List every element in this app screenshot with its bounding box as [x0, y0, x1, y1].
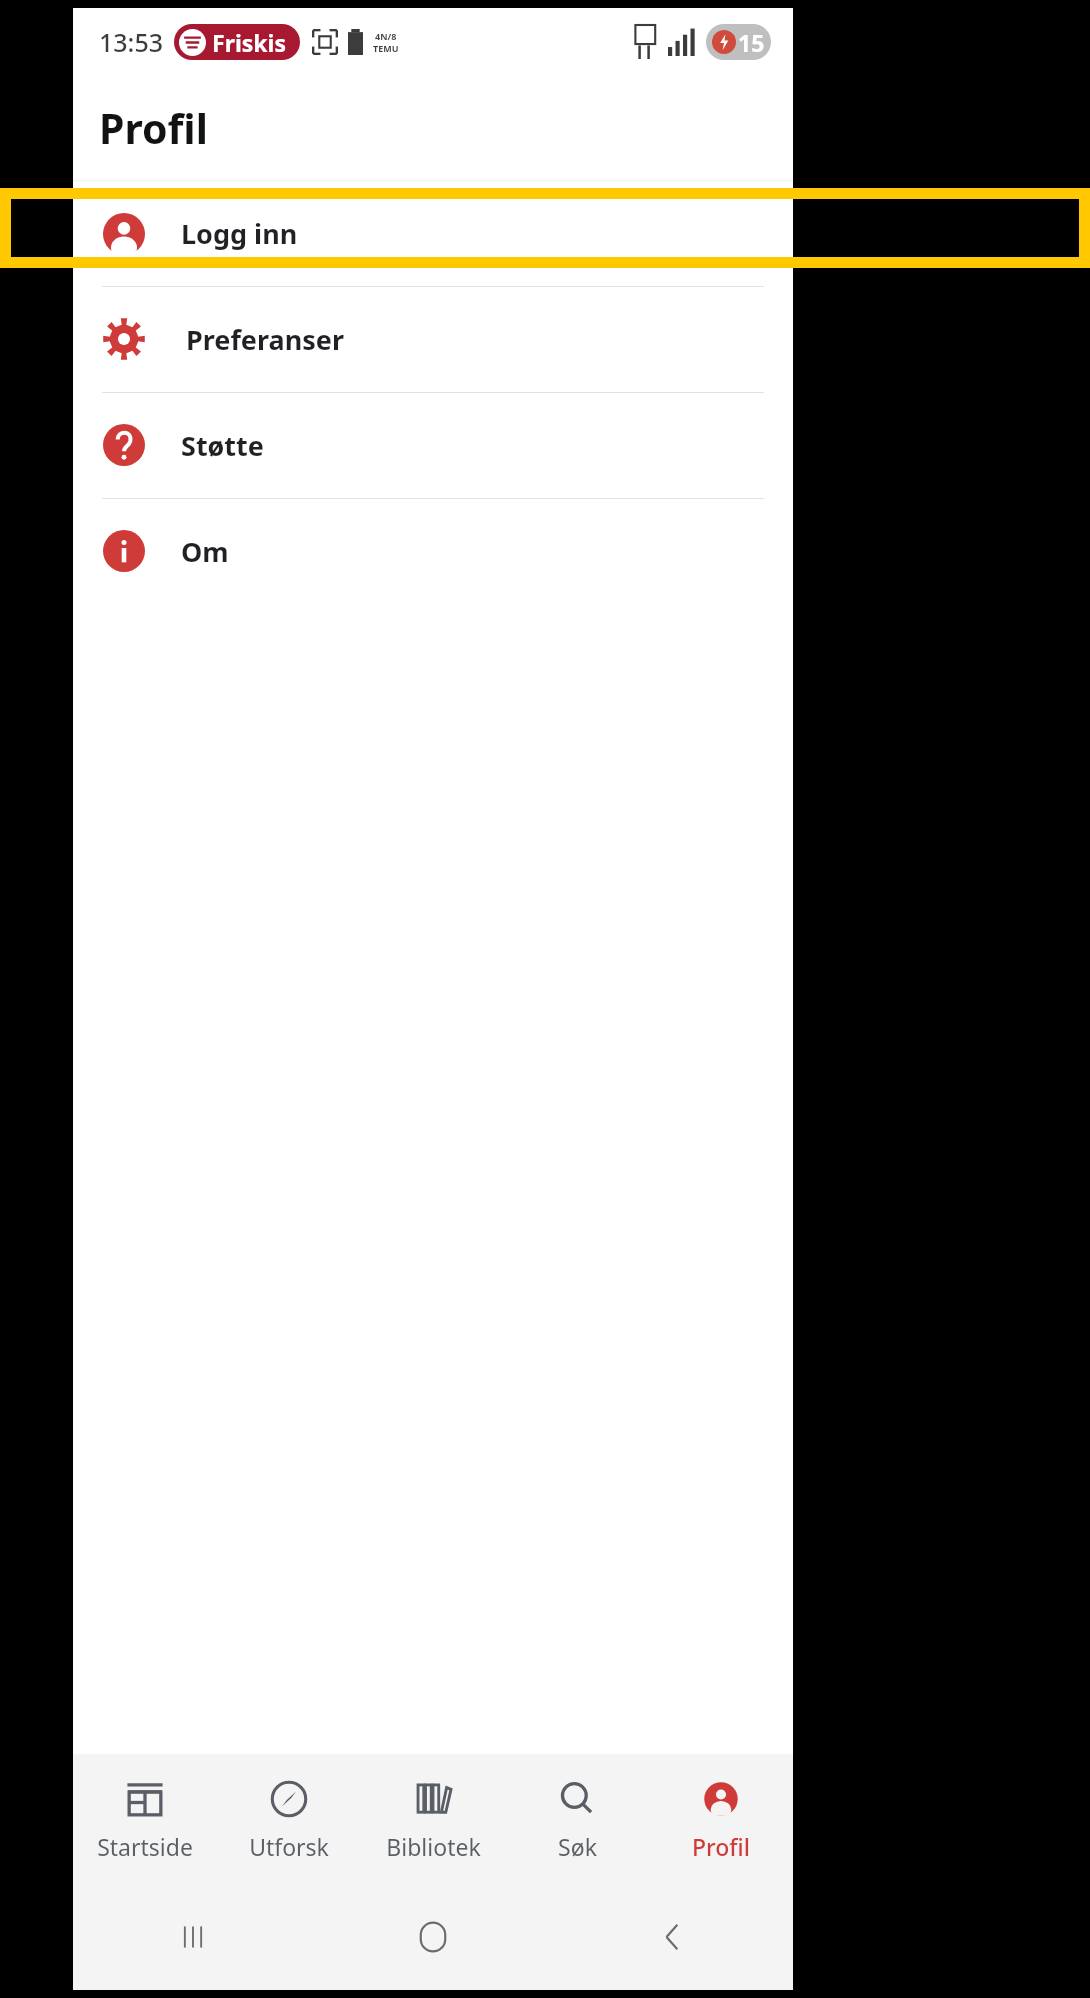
staticText: Støtte	[181, 427, 264, 464]
staticText: 13:53	[99, 25, 164, 59]
staticText: Startside	[97, 1831, 193, 1862]
staticText: 4N/8	[375, 30, 397, 42]
button[interactable]: Logg inn	[73, 181, 793, 286]
button[interactable]: Home	[313, 1884, 553, 1990]
staticText: Bibliotek	[386, 1831, 481, 1862]
button[interactable]: Recent apps	[73, 1884, 313, 1990]
staticText: Utforsk	[249, 1831, 329, 1862]
staticText: Preferanser	[186, 321, 344, 358]
button[interactable]: Back	[553, 1884, 793, 1990]
button[interactable]: Preferanser	[73, 286, 793, 392]
staticText: Søk	[558, 1831, 597, 1862]
staticText: Logg inn	[181, 215, 298, 252]
staticText: 15	[738, 27, 765, 58]
staticText: Friskis	[212, 27, 287, 58]
button[interactable]: Profil	[649, 1754, 793, 1884]
staticText: Om	[181, 533, 229, 570]
button[interactable]: Startside	[73, 1754, 217, 1884]
staticText: Profil	[692, 1831, 750, 1862]
button[interactable]: Om	[73, 498, 793, 604]
staticText: TEMU	[373, 42, 399, 54]
button[interactable]: Utforsk	[217, 1754, 361, 1884]
button[interactable]: Bibliotek	[361, 1754, 505, 1884]
staticText: Profil	[99, 100, 208, 156]
button[interactable]: Støtte	[73, 392, 793, 498]
button[interactable]: Søk	[505, 1754, 649, 1884]
